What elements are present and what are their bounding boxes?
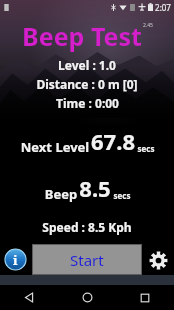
button[interactable]: Start xyxy=(33,245,141,274)
staticText: secs xyxy=(111,190,131,201)
staticText: 2:07 xyxy=(155,2,171,13)
button[interactable]: Home xyxy=(58,285,116,310)
staticText: 2.45 xyxy=(143,22,153,29)
staticText: Speed : 8.5 Kph xyxy=(42,219,132,235)
staticText: 8.5 xyxy=(79,173,111,203)
button[interactable]: Back xyxy=(0,285,58,310)
staticText: Beep xyxy=(43,185,79,203)
staticText: Distance : 0 m [0] xyxy=(36,76,138,92)
staticText: Time : 0:00 xyxy=(56,95,119,111)
button[interactable]: Recents xyxy=(116,285,174,310)
button[interactable]: Settings xyxy=(146,248,170,272)
staticText: 67.8 xyxy=(91,126,135,156)
button[interactable]: Info xyxy=(4,248,27,271)
staticText: secs xyxy=(135,143,155,154)
staticText: Start xyxy=(70,250,104,270)
staticText: Beep Test xyxy=(22,19,142,53)
staticText: i xyxy=(13,251,18,269)
staticText: Level : 1.0 xyxy=(58,57,116,73)
staticText: Next Level xyxy=(19,138,91,156)
